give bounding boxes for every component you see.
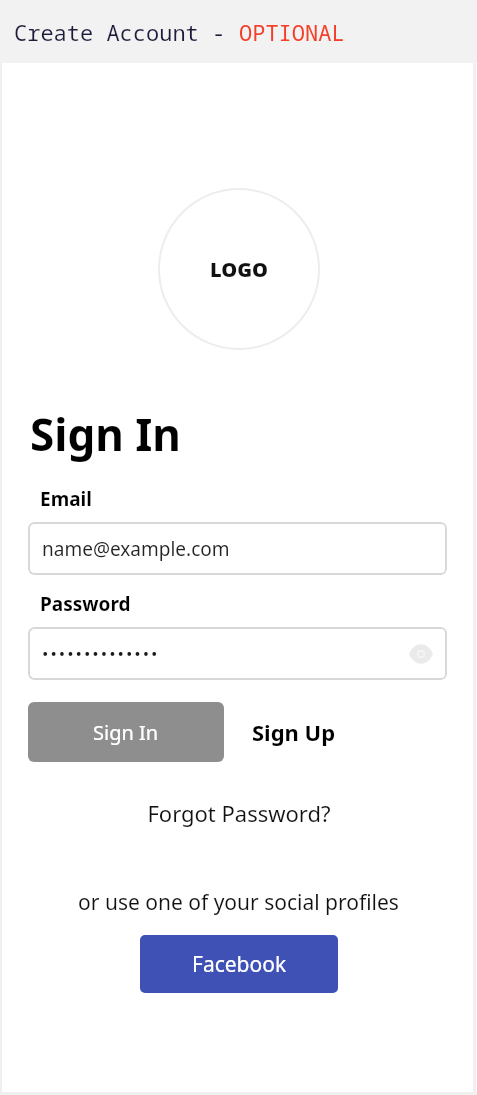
staticText: Sign In bbox=[30, 404, 181, 464]
staticText: Forgot Password? bbox=[147, 798, 331, 828]
button[interactable]: Sign In bbox=[28, 702, 224, 762]
staticText: name@example.com bbox=[42, 536, 230, 562]
button[interactable]: Facebook bbox=[140, 935, 338, 993]
button[interactable]: Show password bbox=[405, 638, 437, 670]
staticText: Email bbox=[40, 486, 92, 512]
button[interactable]: Sign Up bbox=[224, 702, 364, 762]
staticText: OPTIONAL bbox=[239, 17, 345, 47]
staticText: Sign Up bbox=[252, 717, 336, 747]
staticText: Sign In bbox=[93, 719, 159, 746]
staticText: Facebook bbox=[192, 950, 287, 979]
button[interactable]: Forgot Password? bbox=[135, 794, 343, 832]
staticText: •••••••••••••• bbox=[42, 642, 160, 665]
staticText: Create Account - bbox=[14, 17, 239, 47]
staticText: or use one of your social profiles bbox=[78, 888, 399, 917]
staticText: LOGO bbox=[210, 256, 268, 283]
staticText: Password bbox=[40, 591, 131, 617]
button[interactable]: name@example.com bbox=[28, 522, 447, 575]
button[interactable]: •••••••••••••• bbox=[28, 627, 447, 680]
